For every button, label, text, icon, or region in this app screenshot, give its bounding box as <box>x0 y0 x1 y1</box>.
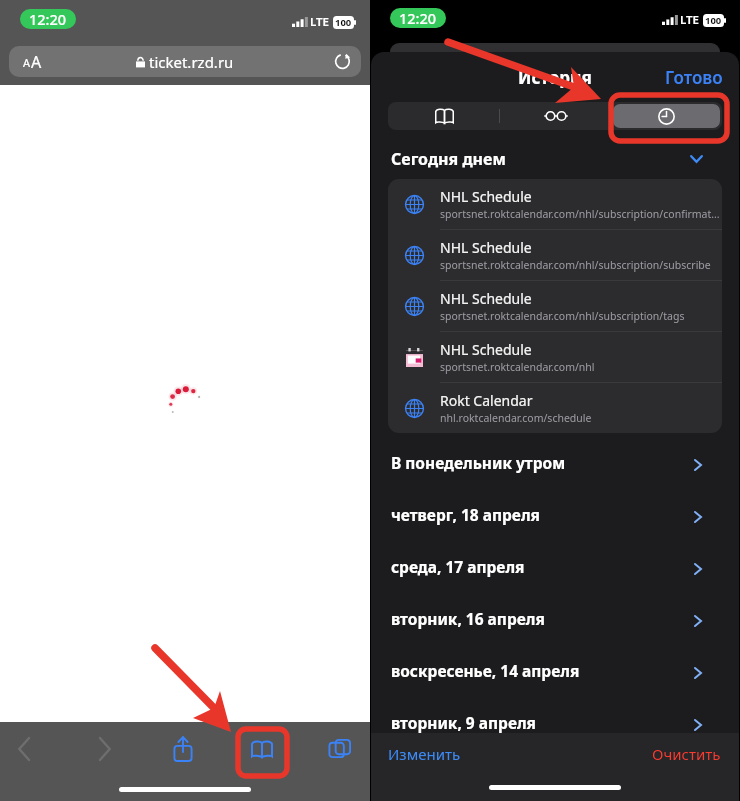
button[interactable] <box>390 104 498 128</box>
staticText: Готово <box>665 66 723 89</box>
button[interactable]: Изменить <box>388 744 461 764</box>
button[interactable]: Rokt Calendar <box>388 383 722 433</box>
button[interactable]: Очистить <box>652 744 721 764</box>
staticText: среда, 17 апреля <box>391 556 525 577</box>
button[interactable]: вторник, 16 апреля <box>391 592 702 644</box>
button[interactable]: Forward <box>80 722 128 776</box>
button[interactable]: Share <box>159 722 207 776</box>
staticText: Очистить <box>652 744 721 764</box>
button[interactable]: NHL Schedule <box>388 332 722 383</box>
staticText: A <box>23 55 31 70</box>
button[interactable]: среда, 17 апреля <box>391 540 702 592</box>
staticText: 100 <box>335 16 352 29</box>
button[interactable] <box>502 104 609 128</box>
button[interactable]: четверг, 18 апреля <box>391 488 702 540</box>
staticText: LTE <box>310 14 330 30</box>
staticText: NHL Schedule <box>440 187 532 206</box>
button[interactable]: NHL Schedule <box>388 281 722 332</box>
staticText: В понедельник утром <box>391 452 566 473</box>
staticText: LTE <box>680 12 700 28</box>
staticText: NHL Schedule <box>440 340 532 359</box>
button[interactable]: В понедельник утром <box>391 436 702 488</box>
button[interactable]: NHL Schedule <box>388 230 722 281</box>
staticText: nhl.roktcalendar.com/schedule <box>440 411 592 425</box>
staticText: sportsnet.roktcalendar.com/nhl/subscript… <box>440 207 720 221</box>
staticText: 12:20 <box>399 8 437 28</box>
staticText: Сегодня днем <box>391 148 506 170</box>
staticText: воскресенье, 14 апреля <box>391 660 580 681</box>
button[interactable]: Готово <box>665 66 723 89</box>
staticText: Rokt Calendar <box>440 391 533 410</box>
button[interactable]: воскресенье, 14 апреля <box>391 644 702 696</box>
button[interactable]: вторник, 9 апреля <box>391 696 702 748</box>
staticText: A <box>31 51 42 73</box>
button[interactable]: NHL Schedule <box>388 179 722 230</box>
staticText: ticket.rzd.ru <box>149 52 234 72</box>
button[interactable] <box>613 104 720 128</box>
staticText: sportsnet.roktcalendar.com/nhl <box>440 360 595 374</box>
staticText: NHL Schedule <box>440 238 532 257</box>
button[interactable]: Tabs <box>316 722 364 776</box>
staticText: вторник, 9 апреля <box>391 712 536 733</box>
staticText: sportsnet.roktcalendar.com/nhl/subscript… <box>440 258 711 272</box>
button[interactable]: A <box>9 46 361 77</box>
staticText: четверг, 18 апреля <box>391 504 540 525</box>
staticText: NHL Schedule <box>440 289 532 308</box>
staticText: вторник, 16 апреля <box>391 608 545 629</box>
button[interactable]: Back <box>0 722 48 776</box>
staticText: Изменить <box>388 744 461 764</box>
button[interactable]: Сегодня днем <box>391 148 703 170</box>
staticText: 12:20 <box>29 9 67 29</box>
staticText: История <box>518 66 592 89</box>
staticText: sportsnet.roktcalendar.com/nhl/subscript… <box>440 309 685 323</box>
button[interactable]: Bookmarks <box>238 722 286 776</box>
staticText: 100 <box>705 14 722 27</box>
